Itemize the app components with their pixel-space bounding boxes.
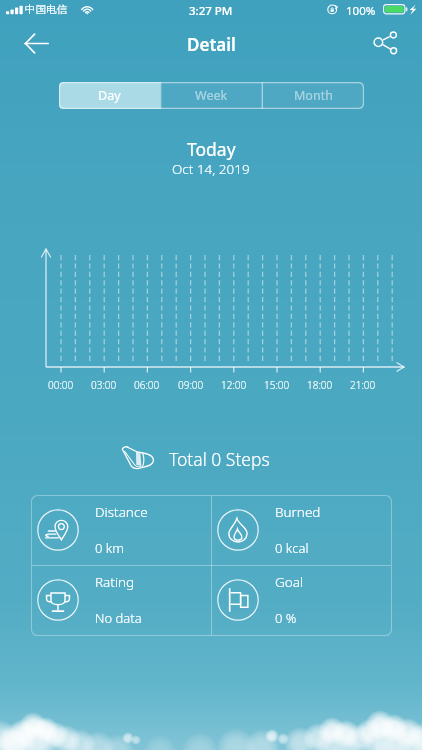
staticText: Oct 14, 2019 <box>172 160 250 178</box>
staticText: Goal <box>275 573 304 591</box>
staticText: Burned <box>275 503 321 521</box>
button[interactable]: Month <box>262 82 364 109</box>
staticText: Today <box>187 137 236 161</box>
staticText: Distance <box>95 503 148 521</box>
button[interactable]: Day <box>59 82 160 109</box>
staticText: 0 km <box>95 539 124 557</box>
staticText: Total 0 Steps <box>169 447 270 471</box>
button[interactable]: Distance <box>31 495 211 565</box>
button[interactable]: Goal <box>211 565 392 636</box>
staticText: 0 % <box>275 609 297 627</box>
staticText: 21:00 <box>350 378 376 392</box>
staticText: No data <box>95 609 142 627</box>
staticText: Week <box>195 87 228 104</box>
staticText: Month <box>294 87 333 104</box>
staticText: 3:27 PM <box>189 3 233 19</box>
staticText: Detail <box>187 33 236 56</box>
staticText: 03:00 <box>91 378 117 392</box>
button[interactable]: Rating <box>31 565 211 636</box>
button[interactable]: Burned <box>211 495 392 565</box>
button[interactable]: Back <box>15 22 57 64</box>
staticText: 06:00 <box>134 378 160 392</box>
staticText: 09:00 <box>178 378 204 392</box>
button[interactable]: Share <box>368 28 398 58</box>
button[interactable]: Week <box>160 82 262 109</box>
staticText: 12:00 <box>221 378 247 392</box>
staticText: Day <box>98 87 121 104</box>
staticText: 00:00 <box>48 378 74 392</box>
staticText: 18:00 <box>307 378 333 392</box>
staticText: 100% <box>346 3 376 19</box>
staticText: 中国电信 <box>25 3 67 16</box>
staticText: 15:00 <box>264 378 290 392</box>
staticText: Rating <box>95 573 135 591</box>
staticText: 0 kcal <box>275 539 309 557</box>
